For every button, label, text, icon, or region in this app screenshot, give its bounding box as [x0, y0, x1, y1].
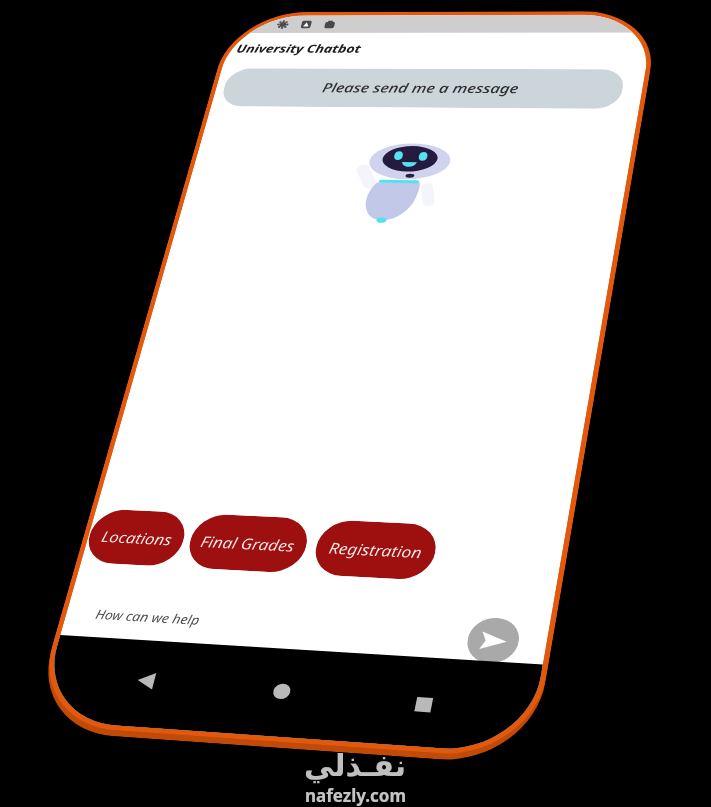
- staticText: Locations: [99, 526, 174, 550]
- staticText: nafezly.com: [305, 784, 407, 807]
- button[interactable]: Registration: [310, 519, 441, 581]
- staticText: Please send me a message: [320, 79, 521, 97]
- button[interactable]: Locations: [82, 508, 191, 567]
- staticText: How can we help: [94, 605, 202, 628]
- button[interactable]: Final Grades: [183, 513, 313, 574]
- staticText: نفـذلي: [304, 748, 407, 783]
- button[interactable]: Send: [463, 616, 523, 665]
- button[interactable]: Recents: [405, 689, 443, 720]
- staticText: Final Grades: [198, 531, 298, 556]
- button[interactable]: Back: [125, 664, 168, 698]
- button[interactable]: Home: [263, 676, 301, 707]
- staticText: Registration: [327, 537, 424, 563]
- staticText: University Chatbot: [235, 41, 363, 56]
